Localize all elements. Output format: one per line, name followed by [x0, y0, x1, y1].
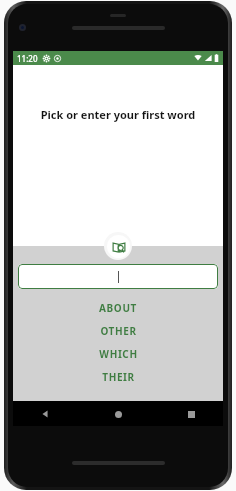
button[interactable]: ABOUT: [13, 296, 223, 319]
staticText: OTHER: [100, 324, 137, 338]
staticText: 11:20: [17, 53, 38, 64]
staticText: ABOUT: [99, 301, 137, 315]
button[interactable]: THEIR: [13, 365, 223, 388]
button[interactable]: Back: [35, 404, 55, 424]
staticText: THEIR: [102, 370, 135, 384]
button[interactable]: OTHER: [13, 319, 223, 342]
staticText: Pick or enter your first word: [13, 107, 223, 122]
button[interactable]: Look up word: [104, 232, 132, 260]
button[interactable]: Home: [108, 404, 128, 424]
button[interactable]: Recent apps: [181, 404, 201, 424]
staticText: WHICH: [99, 347, 138, 361]
button[interactable]: WHICH: [13, 342, 223, 365]
button[interactable]: [18, 264, 218, 289]
